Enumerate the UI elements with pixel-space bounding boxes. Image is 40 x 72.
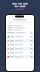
button[interactable]: List item bbox=[6, 43, 34, 47]
button[interactable]: List item bbox=[6, 51, 34, 55]
button[interactable]: List item bbox=[6, 55, 34, 59]
button[interactable]: List item bbox=[6, 39, 34, 43]
button[interactable]: List item bbox=[6, 47, 34, 51]
button[interactable]: List item bbox=[6, 35, 34, 39]
